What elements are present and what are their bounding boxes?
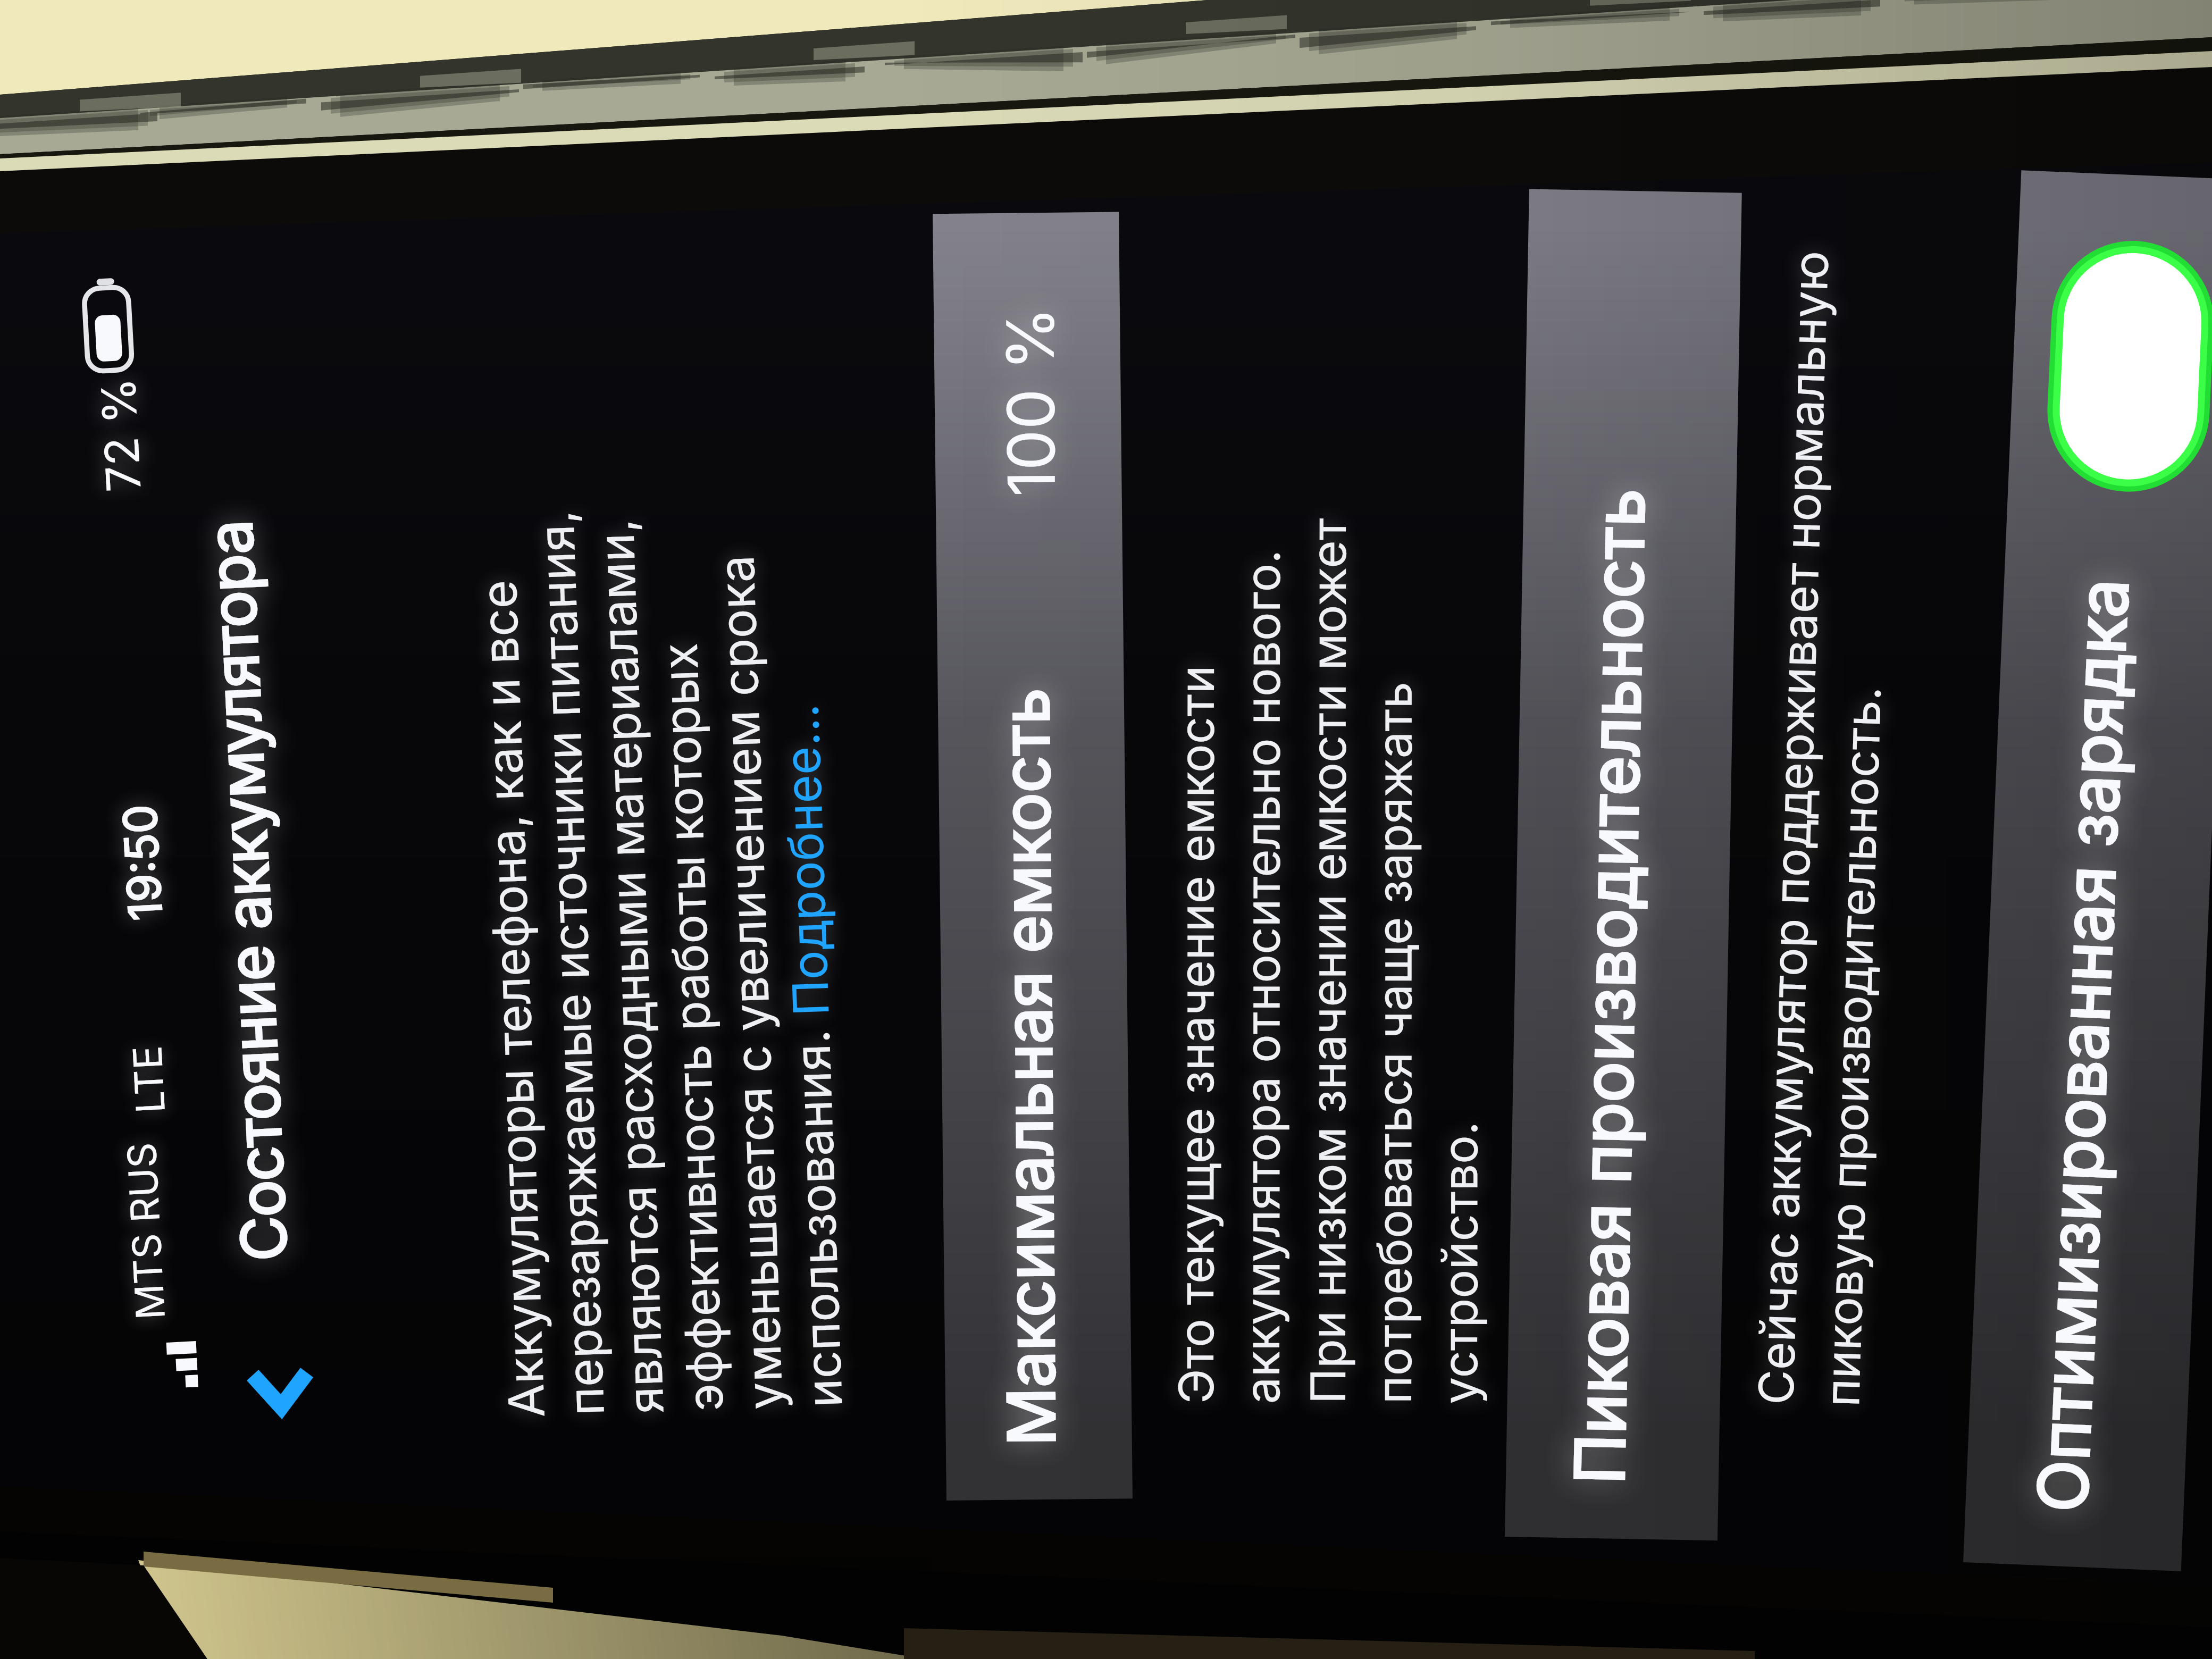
button[interactable]: Optimised battery charging bbox=[2049, 243, 2212, 490]
staticText: Оптимизированная зарядка bbox=[2021, 577, 2145, 1514]
staticText: Максимальная емкость bbox=[986, 687, 1071, 1446]
staticText: Аккумуляторы телефона, как и все перезар… bbox=[465, 455, 854, 1419]
staticText: 19:50 bbox=[112, 803, 173, 922]
staticText: LTE bbox=[123, 1045, 174, 1115]
staticText: Сейчас аккумулятор поддерживает нормальн… bbox=[1747, 181, 1908, 1408]
staticText: MTS RUS bbox=[117, 1141, 174, 1321]
staticText: 100 % bbox=[991, 306, 1071, 497]
button[interactable]: Back bbox=[217, 1329, 344, 1452]
button[interactable] bbox=[1505, 189, 1742, 1541]
staticText: 72 % bbox=[89, 376, 152, 493]
button[interactable] bbox=[933, 212, 1133, 1501]
button[interactable] bbox=[1963, 170, 2212, 1571]
staticText: Состояние аккумулятора bbox=[192, 519, 302, 1263]
staticText: Это текущее значение емкости аккумулятор… bbox=[1167, 500, 1489, 1404]
staticText: Пиковая производительность bbox=[1558, 487, 1661, 1485]
